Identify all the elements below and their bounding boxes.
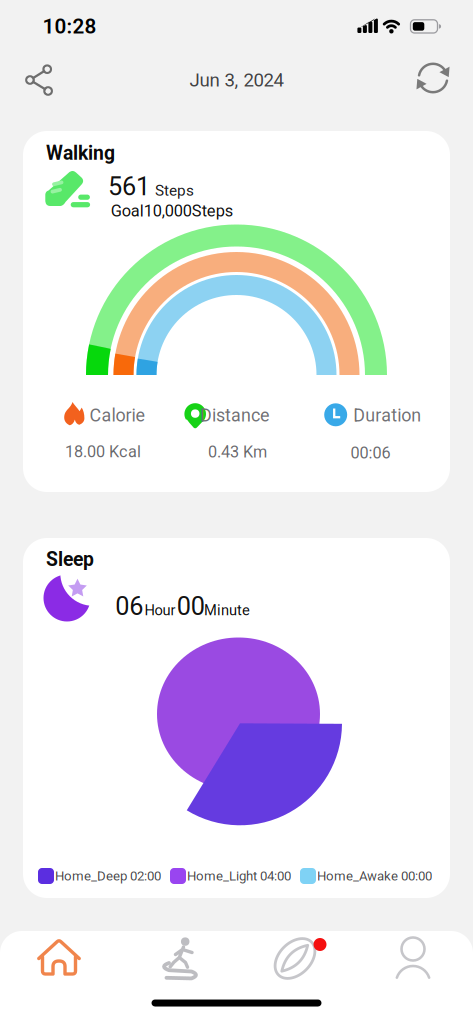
staticText: Calorie xyxy=(90,405,145,426)
staticText: 00 xyxy=(177,591,205,621)
staticText: Home_Deep 02:00 xyxy=(55,868,161,884)
staticText: 10:28 xyxy=(42,14,96,39)
staticText: Sleep xyxy=(46,548,94,571)
button[interactable]: Home xyxy=(29,930,89,986)
staticText: Distance xyxy=(200,405,269,426)
button[interactable]: Sport xyxy=(147,930,207,986)
button[interactable]: Profile xyxy=(383,930,443,986)
staticText: Hour xyxy=(144,602,175,619)
staticText: Minute xyxy=(204,602,250,619)
staticText: Home_Awake 00:00 xyxy=(317,868,432,884)
button[interactable]: Refresh xyxy=(411,56,455,100)
staticText: Jun 3, 2024 xyxy=(189,69,283,91)
staticText: Goal10,000Steps xyxy=(111,201,233,221)
staticText: Steps xyxy=(155,181,194,199)
staticText: 0.43 Km xyxy=(208,442,267,462)
button[interactable]: Share xyxy=(17,58,61,102)
staticText: Home_Light 04:00 xyxy=(187,868,291,884)
staticText: 561 xyxy=(108,172,150,202)
staticText: 00:06 xyxy=(351,443,391,462)
staticText: Walking xyxy=(46,142,115,165)
staticText: 18.00 Kcal xyxy=(65,442,141,461)
staticText: 06 xyxy=(115,591,143,621)
staticText: Duration xyxy=(353,405,421,426)
button[interactable]: Device xyxy=(265,930,325,986)
